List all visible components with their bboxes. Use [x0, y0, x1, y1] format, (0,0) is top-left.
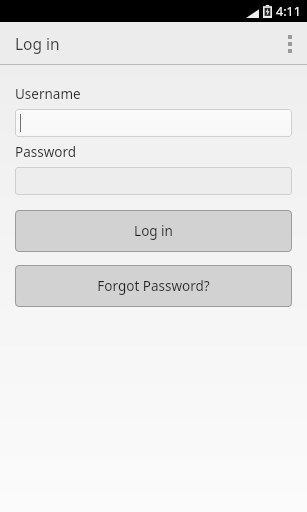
staticText: Username [15, 85, 81, 103]
staticText: Password [15, 143, 77, 161]
staticText: Log in [134, 222, 173, 240]
button[interactable]: Log in [15, 210, 292, 252]
button[interactable]: Forgot Password? [15, 265, 292, 307]
staticText: 4:11 [276, 3, 301, 20]
staticText: Forgot Password? [97, 277, 210, 295]
staticText: Log in [15, 33, 60, 54]
button[interactable]: More options [273, 22, 307, 65]
button[interactable] [15, 109, 292, 137]
button[interactable] [15, 167, 292, 195]
